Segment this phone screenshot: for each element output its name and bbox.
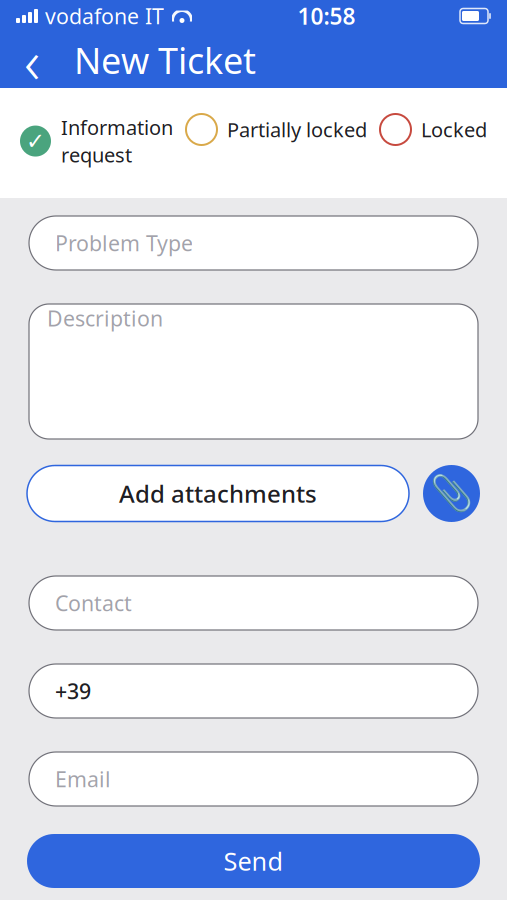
staticText: Problem Type: [55, 229, 193, 257]
button[interactable]: Partially locked: [186, 114, 367, 145]
button[interactable]: Add attachments: [27, 465, 409, 521]
staticText: ‹: [24, 19, 40, 101]
staticText: Description: [47, 304, 163, 332]
button[interactable]: Contact: [29, 576, 478, 630]
staticText: Contact: [55, 589, 132, 617]
button[interactable]: ✓: [20, 114, 173, 168]
button[interactable]: Problem Type: [29, 216, 478, 270]
button[interactable]: +39: [29, 664, 478, 718]
staticText: 10:58: [297, 1, 355, 31]
staticText: +39: [55, 677, 91, 705]
staticText: 📎: [430, 474, 473, 513]
button[interactable]: Back: [8, 36, 56, 84]
staticText: Information: [61, 114, 173, 141]
staticText: Email: [55, 765, 111, 793]
staticText: New Ticket: [74, 36, 256, 84]
staticText: ✓: [26, 128, 45, 154]
button[interactable]: Attach file: [423, 465, 480, 522]
staticText: Send: [223, 844, 283, 878]
staticText: vodafone IT: [45, 2, 164, 30]
staticText: Partially locked: [227, 116, 367, 143]
button[interactable]: Email: [29, 752, 478, 806]
staticText: request: [61, 142, 132, 168]
button[interactable]: Locked: [380, 114, 487, 145]
button[interactable]: Send: [27, 834, 480, 888]
staticText: Add attachments: [119, 478, 317, 509]
staticText: Locked: [421, 116, 487, 143]
